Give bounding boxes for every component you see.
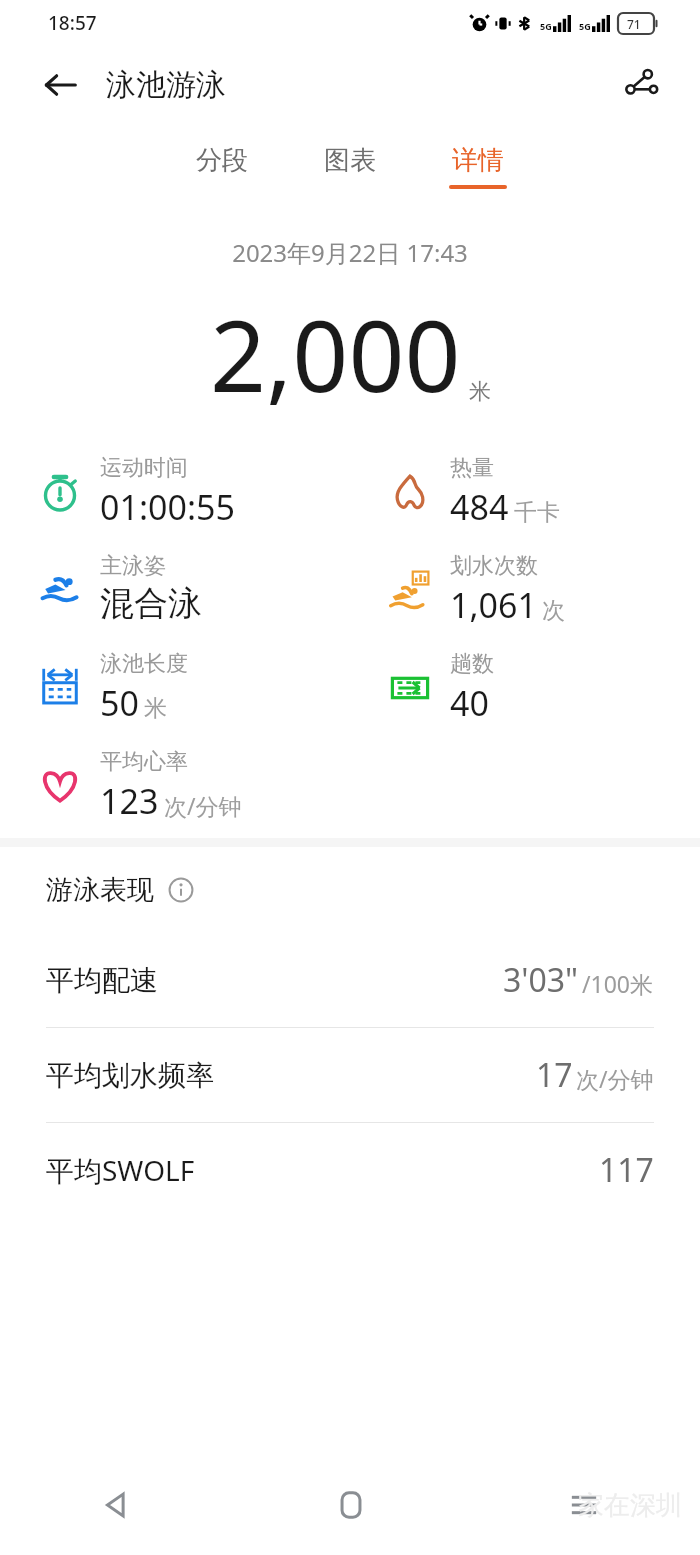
staticText: 117 xyxy=(599,1148,654,1192)
staticText: 5G xyxy=(540,20,552,32)
button[interactable]: Share xyxy=(614,57,670,113)
staticText: 123 xyxy=(100,778,159,824)
staticText: 484 xyxy=(450,484,509,530)
staticText: 平均划水频率 xyxy=(46,1058,214,1093)
button[interactable]: 平均配速 xyxy=(0,933,700,1027)
staticText: 泳池长度 xyxy=(100,650,188,678)
button[interactable]: 主泳姿 xyxy=(0,552,350,625)
staticText: 2,000 xyxy=(210,287,461,420)
button[interactable]: 图表 xyxy=(315,140,385,193)
staticText: 50 xyxy=(100,680,139,726)
staticText: 71 xyxy=(627,16,641,32)
button[interactable]: 分段 xyxy=(187,140,257,193)
staticText: 趟数 xyxy=(450,650,494,678)
staticText: 泳池游泳 xyxy=(106,66,226,104)
button[interactable]: 平均SWOLF xyxy=(0,1123,700,1217)
staticText: 划水次数 xyxy=(450,552,538,580)
button[interactable]: Home xyxy=(234,1455,467,1555)
staticText: 分段 xyxy=(196,144,248,177)
button[interactable]: 平均划水频率 xyxy=(0,1028,700,1122)
button[interactable]: 平均心率 xyxy=(0,748,350,824)
staticText: 1,061 xyxy=(450,582,537,628)
button[interactable]: 划水次数 xyxy=(350,552,700,628)
button[interactable]: 运动时间 xyxy=(0,454,350,530)
staticText: 3'03" xyxy=(503,958,579,1002)
staticText: 次/分钟 xyxy=(576,1063,654,1094)
button[interactable]: Recent apps xyxy=(467,1455,700,1555)
staticText: 01:00:55 xyxy=(100,484,235,530)
staticText: 详情 xyxy=(452,144,504,177)
button[interactable]: Back xyxy=(34,59,86,111)
button[interactable]: Back xyxy=(0,1455,234,1555)
button[interactable]: Info xyxy=(164,873,198,907)
staticText: 2023年9月22日 17:43 xyxy=(232,236,468,269)
button[interactable]: 泳池长度 xyxy=(0,650,350,726)
staticText: 次 xyxy=(542,596,565,625)
staticText: 平均SWOLF xyxy=(46,1151,195,1189)
staticText: 混合泳 xyxy=(100,582,202,625)
staticText: /100米 xyxy=(582,968,654,999)
button[interactable]: 详情 xyxy=(443,140,513,193)
button[interactable]: 趟数 xyxy=(350,650,700,726)
staticText: 平均心率 xyxy=(100,748,188,776)
staticText: 40 xyxy=(450,680,489,726)
staticText: 米 xyxy=(469,378,491,406)
staticText: 图表 xyxy=(324,144,376,177)
staticText: 17 xyxy=(536,1053,573,1097)
staticText: 家在深圳 xyxy=(578,1489,682,1522)
staticText: 游泳表现 xyxy=(46,873,154,907)
staticText: 米 xyxy=(144,694,167,723)
staticText: 次/分钟 xyxy=(164,790,242,821)
staticText: 主泳姿 xyxy=(100,552,166,580)
staticText: 热量 xyxy=(450,454,494,482)
button[interactable]: 热量 xyxy=(350,454,700,530)
staticText: 18:57 xyxy=(48,10,97,36)
staticText: 运动时间 xyxy=(100,454,188,482)
staticText: 千卡 xyxy=(514,498,560,527)
staticText: 5G xyxy=(579,20,591,32)
staticText: 平均配速 xyxy=(46,963,158,998)
